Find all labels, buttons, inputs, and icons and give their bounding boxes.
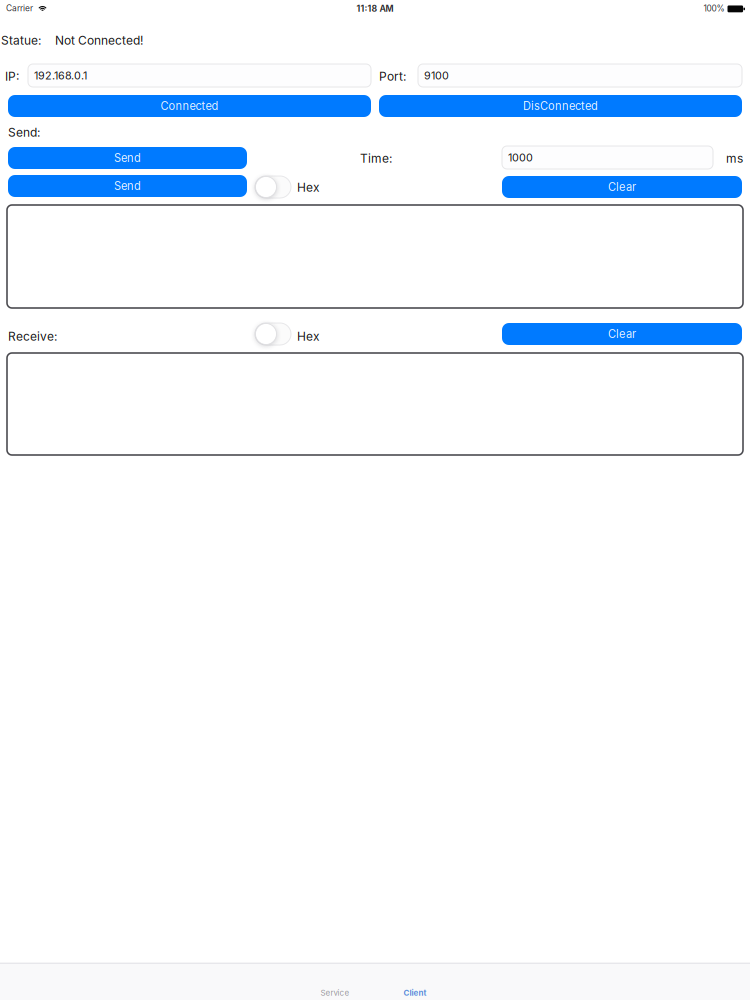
staticText: Send: [8,125,40,139]
staticText: Clear [608,180,636,194]
staticText: Carrier [6,3,33,13]
staticText: 1000 [508,151,533,164]
button[interactable]: 9100 [418,64,742,87]
staticText: Connected [160,99,218,113]
button[interactable]: Hex [255,176,291,198]
staticText: Statue: [1,33,41,47]
button[interactable]: 1000 [502,146,713,169]
staticText: IP: [5,69,19,83]
button[interactable]: Send [8,175,247,197]
staticText: ms [726,151,743,165]
button[interactable]: Hex [255,323,291,345]
staticText: DisConnected [523,99,598,113]
button[interactable]: Clear [502,176,742,198]
staticText: Not Connected! [55,33,143,47]
staticText: Hex [297,329,320,343]
staticText: Service [320,988,349,998]
staticText: Time: [360,151,392,165]
staticText: Client [403,988,426,998]
staticText: Receive: [8,329,57,343]
staticText: 11:18 AM [356,3,393,14]
staticText: Port: [379,69,406,83]
button[interactable]: Connected [8,95,371,117]
button[interactable]: DisConnected [379,95,742,117]
button[interactable]: 192.168.0.1 [28,64,371,87]
staticText: Clear [608,327,636,341]
staticText: 192.168.0.1 [34,69,87,82]
button[interactable]: Service [295,964,375,998]
staticText: Send [114,151,141,165]
button[interactable]: Send [8,147,247,169]
button[interactable]: Clear [502,323,742,345]
staticText: Hex [297,180,320,194]
staticText: 100% [703,3,724,14]
staticText: 9100 [424,69,449,82]
staticText: Send [114,179,141,193]
button[interactable]: Client [375,964,455,998]
